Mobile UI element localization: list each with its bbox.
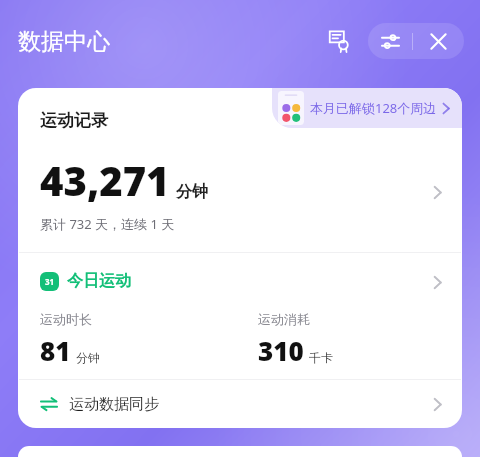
staticText: 本月已解锁128个周边: [310, 99, 437, 117]
button[interactable]: 运动记录: [18, 88, 462, 252]
button[interactable]: [18, 446, 462, 457]
staticText: 31: [45, 276, 55, 287]
staticText: 310: [258, 333, 304, 368]
staticText: 分钟: [76, 350, 100, 365]
staticText: 运动时长: [40, 311, 92, 327]
staticText: 分钟: [176, 182, 208, 202]
staticText: 运动数据同步: [69, 395, 159, 414]
staticText: 运动记录: [40, 110, 108, 131]
button[interactable]: Certificate: [322, 24, 356, 58]
staticText: 43,271: [40, 153, 170, 207]
staticText: 数据中心: [18, 27, 110, 56]
button[interactable]: 运动数据同步: [18, 380, 462, 428]
button[interactable]: 31: [18, 253, 462, 379]
button[interactable]: 本月已解锁128个周边: [272, 88, 462, 128]
button[interactable]: Close: [413, 23, 464, 59]
staticText: 今日运动: [67, 271, 131, 291]
staticText: 运动消耗: [258, 311, 310, 327]
staticText: 累计 732 天，连续 1 天: [40, 215, 175, 233]
staticText: 千卡: [309, 350, 333, 365]
staticText: 81: [40, 333, 71, 368]
button[interactable]: Settings: [368, 23, 412, 59]
